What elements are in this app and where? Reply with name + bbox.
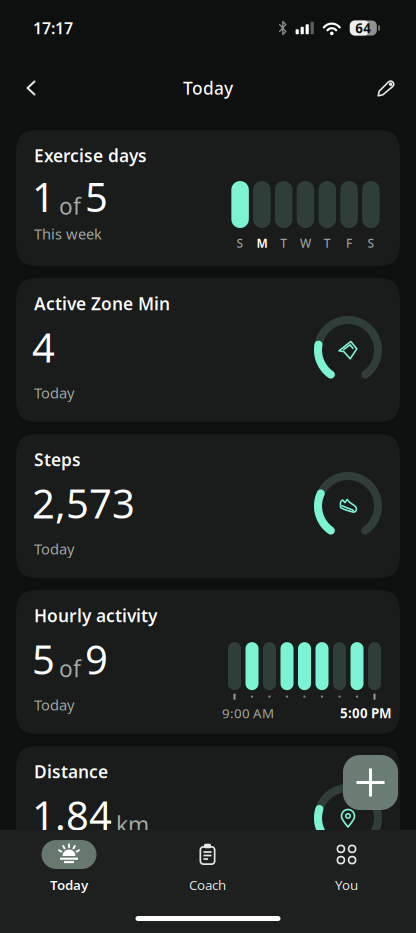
staticText: 5 <box>32 632 55 686</box>
button[interactable]: S <box>16 130 400 266</box>
staticText: W <box>300 235 311 251</box>
staticText: Today <box>34 695 74 714</box>
staticText: This week <box>34 224 102 243</box>
staticText: 17:17 <box>33 17 73 39</box>
staticText: 5 <box>85 170 108 223</box>
staticText: 2,573 <box>32 476 135 530</box>
staticText: 1 <box>32 170 55 223</box>
staticText: Today <box>34 383 74 402</box>
staticText: of <box>59 653 81 684</box>
staticText: 9:00 AM <box>222 704 274 722</box>
button[interactable]: You <box>277 840 416 894</box>
staticText: S <box>237 235 244 251</box>
staticText: M <box>256 235 267 251</box>
button[interactable]: Active Zone Min <box>16 278 400 422</box>
staticText: Today <box>50 876 88 894</box>
staticText: Coach <box>189 876 226 894</box>
staticText: 5:00 PM <box>340 704 392 722</box>
staticText: of <box>59 191 81 221</box>
button[interactable]: Distance <box>16 746 400 890</box>
staticText: 9 <box>85 632 108 686</box>
staticText: S <box>367 235 374 251</box>
button[interactable]: Add <box>343 755 398 810</box>
staticText: 4 <box>32 320 55 374</box>
staticText: km <box>116 809 149 840</box>
staticText: F <box>346 235 352 251</box>
staticText: You <box>335 876 358 894</box>
staticText: T <box>324 235 331 251</box>
staticText: 64 <box>355 19 371 37</box>
button[interactable]: Back <box>0 66 37 110</box>
staticText: 1.84 <box>32 788 112 842</box>
staticText: T <box>280 235 287 251</box>
button[interactable]: Steps <box>16 434 400 578</box>
staticText: Active Zone Min <box>34 292 170 315</box>
staticText: Today <box>34 851 74 870</box>
staticText: Steps <box>34 448 81 471</box>
button[interactable]: Today <box>0 840 138 894</box>
staticText: Hourly activity <box>34 604 157 627</box>
staticText: Distance <box>34 760 108 783</box>
staticText: Exercise days <box>34 144 147 167</box>
staticText: Today <box>34 539 74 558</box>
button[interactable]: 9:00 AM <box>16 590 400 734</box>
staticText: Today <box>183 76 233 99</box>
button[interactable]: Coach <box>138 840 277 894</box>
button[interactable]: Edit <box>375 66 416 110</box>
